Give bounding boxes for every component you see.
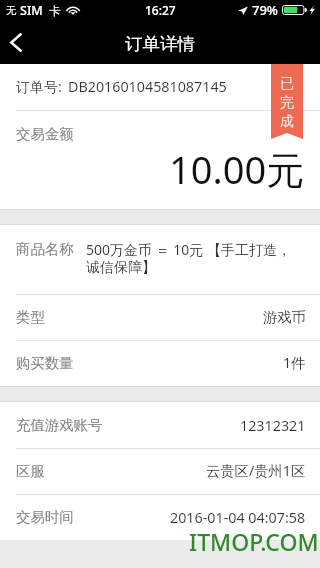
staticText: 订单号: — [16, 77, 62, 96]
staticText: 10.00元 — [169, 143, 305, 195]
staticText: 游戏币 — [263, 308, 306, 326]
staticText: 云贵区/贵州1区 — [206, 461, 306, 481]
button[interactable]: 交易时间 — [0, 494, 320, 540]
staticText: 卡 — [49, 4, 61, 18]
staticText: 1件 — [283, 353, 306, 373]
staticText: 充值游戏账号 — [16, 416, 103, 434]
button[interactable]: 类型 — [0, 294, 320, 340]
staticText: 类型 — [16, 308, 45, 326]
staticText: ITMOP.COM — [189, 526, 319, 557]
staticText: 79% — [252, 1, 278, 19]
staticText: 商品名称 — [16, 240, 74, 258]
staticText: 已 完 成 — [280, 75, 294, 130]
staticText: 购买数量 — [16, 354, 74, 372]
staticText: 订单详情 — [125, 33, 195, 55]
staticText: 12312321 — [240, 416, 306, 435]
staticText: 交易时间 — [16, 508, 74, 526]
staticText: DB20160104581087145 — [68, 77, 227, 96]
staticText: 区服 — [16, 462, 45, 480]
button[interactable]: 区服 — [0, 448, 320, 494]
button[interactable]: 商品名称 — [0, 225, 320, 294]
staticText: 500万金币 ＝ 10元 【手工打造， 诚信保障】 — [86, 240, 291, 276]
staticText: SIM — [20, 2, 43, 19]
staticText: 无 — [6, 4, 17, 17]
staticText: 16:27 — [145, 2, 176, 18]
staticText: 2016-01-04 04:07:58 — [170, 508, 306, 527]
button[interactable]: 交易金额 — [0, 110, 320, 209]
button[interactable]: 购买数量 — [0, 340, 320, 386]
staticText: 交易金额 — [16, 125, 74, 143]
button[interactable]: Back — [0, 20, 40, 64]
button[interactable]: 充值游戏账号 — [0, 402, 320, 448]
button[interactable]: 订单号: — [0, 64, 320, 110]
